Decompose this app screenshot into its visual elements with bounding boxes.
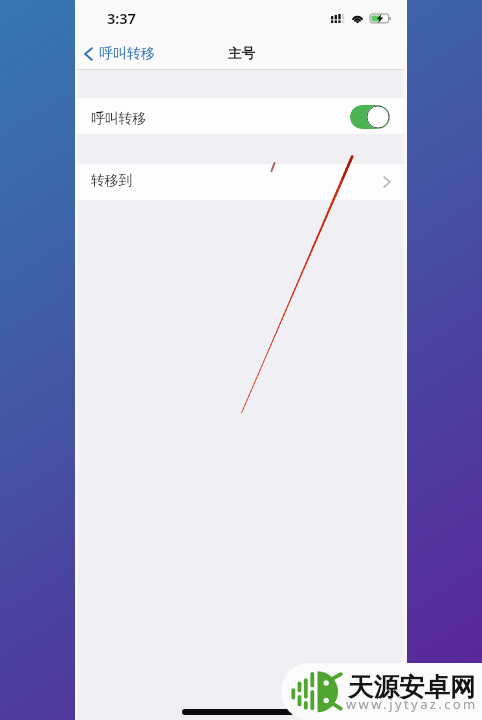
staticText: 3:37 bbox=[107, 8, 136, 28]
staticText: www.jytyaz.com bbox=[346, 695, 478, 713]
staticText: 转移到 bbox=[91, 172, 133, 189]
button[interactable]: 呼叫转移 开关, 已开启 bbox=[350, 105, 390, 129]
staticText: 呼叫转移 bbox=[91, 110, 147, 127]
button[interactable]: 呼叫转移 bbox=[75, 98, 407, 134]
staticText: 呼叫转移 bbox=[99, 45, 155, 63]
staticText: 天源安卓网 bbox=[348, 671, 476, 703]
button[interactable]: 转移到 bbox=[75, 164, 407, 200]
button[interactable]: 返回 呼叫转移 bbox=[81, 40, 158, 68]
staticText: 主号 bbox=[228, 45, 255, 62]
